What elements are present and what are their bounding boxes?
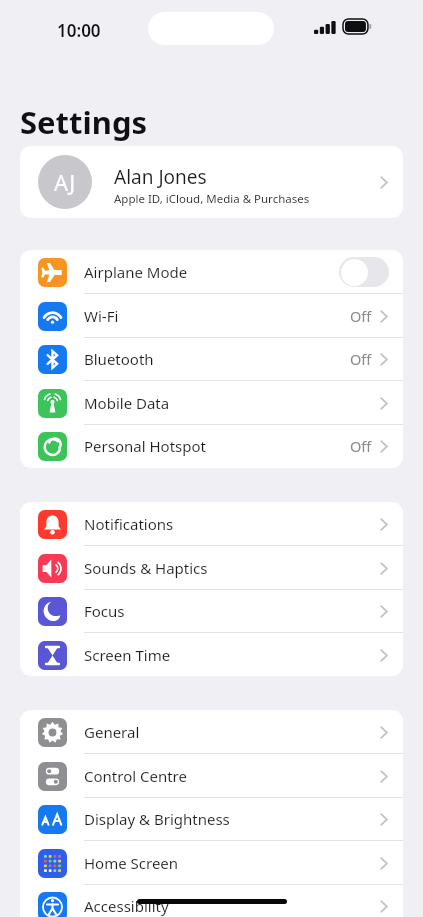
button[interactable]: General [20, 710, 403, 754]
staticText: Display & Brightness [84, 809, 230, 829]
button[interactable]: Sounds & Haptics [20, 546, 403, 590]
button[interactable]: Wi-Fi [20, 294, 403, 338]
button[interactable]: Personal Hotspot [20, 424, 403, 468]
staticText: Personal Hotspot [84, 436, 206, 456]
button[interactable]: Airplane Mode [20, 250, 403, 294]
staticText: 10:00 [57, 19, 101, 42]
staticText: General [84, 722, 140, 742]
staticText: Airplane Mode [84, 262, 188, 282]
staticText: Sounds & Haptics [84, 558, 208, 578]
staticText: Home Screen [84, 853, 179, 873]
staticText: Control Centre [84, 766, 187, 786]
button[interactable]: Focus [20, 589, 403, 633]
button[interactable]: Airplane Mode switch, off [339, 257, 389, 287]
button[interactable]: Control Centre [20, 754, 403, 798]
button[interactable]: AJ [20, 146, 403, 218]
staticText: AJ [54, 167, 76, 197]
staticText: Notifications [84, 514, 174, 534]
staticText: Off [350, 436, 372, 456]
staticText: Alan Jones [114, 164, 207, 190]
button[interactable]: Accessibility [20, 884, 403, 917]
staticText: Screen Time [84, 645, 171, 665]
button[interactable]: Screen Time [20, 633, 403, 676]
button[interactable]: Display & Brightness [20, 797, 403, 841]
staticText: Apple ID, iCloud, Media & Purchases [114, 191, 310, 207]
staticText: Focus [84, 601, 125, 621]
staticText: Off [350, 306, 372, 326]
staticText: Settings [20, 101, 148, 143]
staticText: Accessibility [84, 896, 169, 916]
staticText: Bluetooth [84, 349, 154, 369]
staticText: Off [350, 349, 372, 369]
button[interactable]: Home Screen [20, 841, 403, 885]
staticText: Mobile Data [84, 393, 170, 413]
button[interactable]: Notifications [20, 502, 403, 546]
button[interactable]: Mobile Data [20, 381, 403, 425]
button[interactable]: Bluetooth [20, 337, 403, 381]
staticText: Wi-Fi [84, 306, 119, 326]
